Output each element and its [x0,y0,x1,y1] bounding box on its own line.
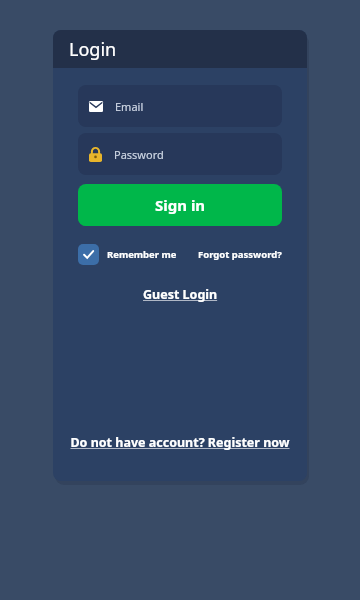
staticText: Sign in [155,195,206,215]
staticText: Guest Login [143,286,218,303]
button[interactable]: Email [78,85,282,127]
button[interactable]: Forgot password? [198,248,282,261]
button[interactable]: Do not have account? Register now [64,432,296,453]
other: Password [89,147,102,162]
button[interactable]: Guest Login [137,284,224,305]
staticText: Forgot password? [198,248,282,261]
button[interactable]: Sign in [78,184,282,226]
button[interactable]: Password [78,133,282,175]
staticText: Login [69,37,117,62]
other: Email [89,101,103,112]
staticText: Remember me [107,248,177,261]
button[interactable]: Remember me [78,244,177,265]
staticText: Email [115,99,144,114]
staticText: Do not have account? Register now [70,434,290,451]
staticText: Password [114,147,164,162]
